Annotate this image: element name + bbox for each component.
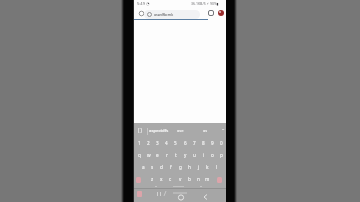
button[interactable]: aspectdfs (148, 125, 170, 136)
button[interactable]: q (135, 149, 144, 160)
staticText: ( ) (138, 127, 142, 133)
button[interactable]: w (144, 149, 153, 160)
button[interactable]: ase (174, 125, 186, 136)
button[interactable] (172, 189, 190, 202)
button[interactable]: p (217, 149, 226, 160)
button[interactable] (208, 10, 214, 16)
staticText: 0 (220, 140, 223, 146)
button[interactable]: k (203, 161, 212, 172)
button[interactable] (203, 194, 208, 200)
staticText: i (203, 152, 205, 158)
staticText: aspectdfs (149, 128, 169, 134)
button[interactable] (218, 10, 224, 16)
button[interactable]: g (176, 161, 185, 172)
button[interactable]: 3 (153, 137, 162, 148)
staticText: x (160, 176, 163, 182)
button[interactable]: c (166, 173, 175, 184)
button[interactable]: 2 (144, 137, 153, 148)
button[interactable]: y (181, 149, 190, 160)
staticText: as (203, 128, 208, 133)
staticText: 4 (165, 140, 168, 146)
staticText: n (197, 176, 200, 182)
button[interactable]: u (190, 149, 199, 160)
button[interactable]: t (171, 149, 180, 160)
staticText: v (179, 176, 182, 182)
staticText: q (138, 152, 141, 158)
staticText: – (222, 126, 225, 132)
button[interactable]: v (176, 173, 185, 184)
button[interactable]: l (212, 161, 221, 172)
button[interactable]: aswdfbcmk (144, 10, 200, 19)
button[interactable]: 6 (181, 137, 190, 148)
staticText: y (184, 152, 187, 158)
staticText: l (216, 164, 218, 170)
button[interactable] (137, 191, 142, 197)
staticText: z (151, 176, 154, 182)
button[interactable]: f (166, 161, 175, 172)
staticText: o (211, 152, 214, 158)
button[interactable]: e (153, 149, 162, 160)
staticText: 8 (202, 140, 205, 146)
staticText: 2 (147, 140, 150, 146)
button[interactable]: b (185, 173, 194, 184)
staticText: e (156, 152, 159, 158)
button[interactable]: 1 (135, 137, 144, 148)
button[interactable]: 7 (190, 137, 199, 148)
button[interactable]: i (199, 149, 208, 160)
staticText: c (169, 176, 172, 182)
button[interactable]: 4 (162, 137, 171, 148)
button[interactable]: r (162, 149, 171, 160)
button[interactable]: 8 (199, 137, 208, 148)
staticText: 7 (193, 140, 196, 146)
staticText: u (193, 152, 196, 158)
staticText: a (142, 164, 145, 170)
button[interactable]: m (203, 173, 212, 184)
staticText: t (175, 152, 177, 158)
staticText: 9 (211, 140, 214, 146)
staticText: 36.1KB/S ⚡ 90%▮ (191, 1, 219, 6)
button[interactable]: x (157, 173, 166, 184)
staticText: 3 (156, 140, 159, 146)
button[interactable]: s (148, 161, 157, 172)
button[interactable]: j (194, 161, 203, 172)
button[interactable] (138, 10, 145, 17)
staticText: aswdfbcmk (154, 12, 174, 17)
staticText: k (206, 164, 209, 170)
staticText: s (151, 164, 154, 170)
staticText: 5 (174, 140, 177, 146)
staticText: d (160, 164, 163, 170)
staticText: 5:49 ◔ (137, 1, 150, 6)
staticText: ase (177, 128, 184, 133)
staticText: b (188, 176, 191, 182)
button[interactable]: 5 (171, 137, 180, 148)
button[interactable]: o (208, 149, 217, 160)
button[interactable] (136, 177, 141, 183)
staticText: 1 (138, 140, 141, 146)
staticText: j (198, 164, 200, 170)
button[interactable]: as (199, 125, 211, 136)
button[interactable]: a (139, 161, 148, 172)
button[interactable]: 0 (217, 137, 226, 148)
staticText: g (179, 164, 182, 170)
staticText: h (188, 164, 191, 170)
button[interactable]: n (194, 173, 203, 184)
button[interactable] (217, 177, 222, 183)
button[interactable]: h (185, 161, 194, 172)
staticText: f (170, 164, 172, 170)
staticText: r (166, 152, 168, 158)
staticText: m (205, 176, 210, 182)
staticText: w (147, 152, 151, 158)
staticText: 6 (184, 140, 187, 146)
button[interactable]: 9 (208, 137, 217, 148)
button[interactable]: z (148, 173, 157, 184)
button[interactable]: d (157, 161, 166, 172)
staticText: p (220, 152, 223, 158)
